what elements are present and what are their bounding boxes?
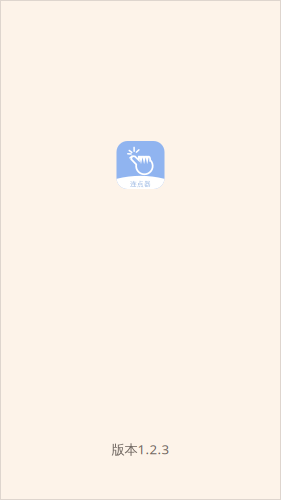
staticText: 连点器: [130, 180, 151, 188]
staticText: 版本1.2.3: [111, 440, 169, 458]
